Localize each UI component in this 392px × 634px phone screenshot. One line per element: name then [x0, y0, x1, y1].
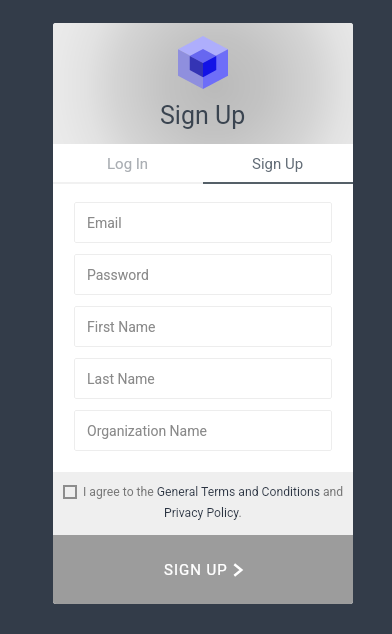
- staticText: Password: [87, 267, 149, 283]
- staticText: Email: [87, 215, 122, 231]
- button[interactable]: Log In: [53, 144, 203, 184]
- button[interactable]: I agree to the terms checkbox: [63, 485, 77, 499]
- button[interactable]: Password: [74, 254, 332, 295]
- button[interactable]: Organization Name: [74, 410, 332, 451]
- staticText: I agree to the General Terms and Conditi…: [83, 485, 344, 499]
- staticText: Privacy Policy.: [164, 506, 242, 520]
- staticText: SIGN UP: [164, 561, 228, 579]
- staticText: Sign Up: [160, 101, 246, 130]
- button[interactable]: SIGN UP: [53, 535, 353, 604]
- staticText: First Name: [87, 319, 156, 335]
- button[interactable]: Email: [74, 202, 332, 243]
- button[interactable]: Last Name: [74, 358, 332, 399]
- staticText: Log In: [107, 155, 149, 173]
- button[interactable]: First Name: [74, 306, 332, 347]
- staticText: Sign Up: [252, 155, 304, 173]
- button[interactable]: Sign Up: [203, 144, 353, 184]
- staticText: Last Name: [87, 371, 155, 387]
- staticText: Organization Name: [87, 423, 207, 439]
